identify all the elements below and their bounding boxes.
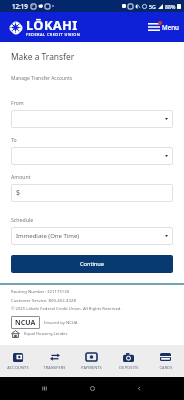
staticText: NCUA [15, 318, 36, 328]
staticText: LŌKAHI [26, 16, 78, 34]
staticText: Customer Service: 800-452-4328 [11, 297, 76, 303]
staticText: PAYMENTS [81, 365, 102, 370]
button[interactable]: TRANSFERS [36, 345, 73, 377]
button[interactable]: DEPOSITS [110, 345, 147, 377]
button[interactable]: Immediate (One Time) [11, 227, 173, 245]
button[interactable]: ACCOUNTS [0, 345, 36, 377]
staticText: ACCOUNTS [7, 365, 29, 370]
staticText: Amount [11, 173, 31, 180]
staticText: Continue [80, 260, 104, 268]
button[interactable]: PAYMENTS [73, 345, 110, 377]
button[interactable]: Menu [148, 23, 179, 31]
other: Recents [41, 385, 48, 392]
staticText: CARDS [159, 365, 173, 370]
staticText: FEDERAL CREDIT UNION [26, 32, 81, 37]
staticText: From [11, 99, 24, 106]
staticText: © 2025 Lōkahi Federal Credit Union. All … [11, 306, 122, 312]
staticText: $ [16, 188, 21, 198]
staticText: 88% [165, 3, 176, 10]
staticText: Routing Number: 321173130 [11, 288, 70, 294]
button[interactable]: Continue [11, 255, 173, 273]
staticText: 5G [149, 3, 156, 10]
button[interactable]: Select [11, 110, 173, 128]
staticText: TRANSFERS [43, 365, 66, 370]
staticText: Schedule [11, 216, 34, 223]
button[interactable]: $ [11, 184, 173, 202]
staticText: Insured by NCUA [44, 320, 78, 326]
staticText: Make a Transfer [11, 51, 75, 62]
staticText: 12:19 [12, 2, 28, 10]
staticText: Immediate (One Time) [16, 232, 80, 240]
other: Home [89, 385, 96, 392]
button[interactable]: Manage Transfer Accounts [11, 75, 73, 82]
other: Back [136, 385, 143, 392]
button[interactable]: CARDS [147, 345, 184, 377]
staticText: Menu [162, 23, 179, 31]
staticText: To [11, 136, 17, 143]
staticText: DEPOSITS [119, 365, 139, 370]
button[interactable]: Select [11, 147, 173, 165]
staticText: Equal Housing Lender [24, 331, 68, 337]
